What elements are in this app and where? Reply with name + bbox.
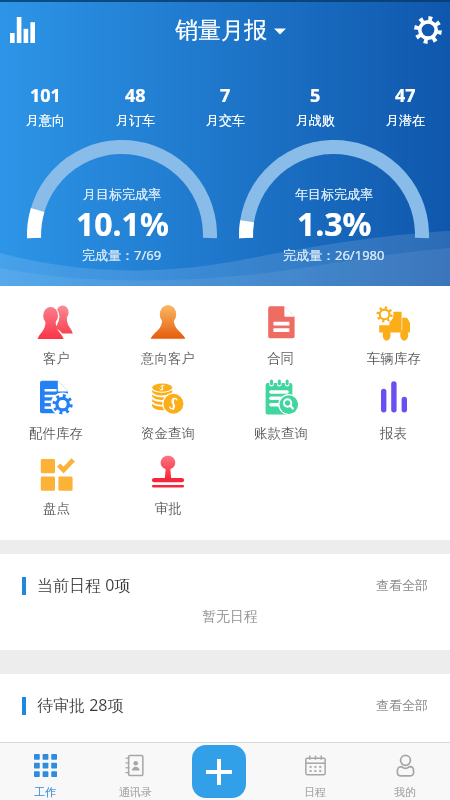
staticText: 完成量：7/69 [82,246,162,264]
staticText: 完成量：26/1980 [283,246,385,264]
staticText: 5 [310,83,321,108]
staticText: 日程 [304,785,326,799]
button[interactable]: 47 [360,83,450,128]
staticText: 月潜在 [386,112,425,128]
button[interactable]: Reports [0,8,44,52]
staticText: 工作 [34,785,56,799]
button[interactable]: Settings [406,8,450,52]
staticText: 通讯录 [119,785,152,799]
staticText: 月订车 [116,112,155,128]
button[interactable]: 查看全部 [372,693,432,717]
button[interactable]: 7 [180,83,270,128]
staticText: 资金查询 [141,425,195,442]
staticText: 年目标完成率 [295,186,373,202]
button[interactable]: 审批 [112,449,224,524]
staticText: 合同 [267,350,294,367]
staticText: 销量月报 [175,16,267,45]
button[interactable]: 合同 [224,299,337,374]
button[interactable]: 资金查询 [112,374,224,449]
staticText: 月目标完成率 [83,186,161,202]
staticText: 月交车 [206,112,245,128]
button[interactable]: 48 [90,83,180,128]
staticText: 查看全部 [376,697,428,713]
button[interactable]: 报表 [337,374,450,449]
staticText: 配件库存 [29,425,83,442]
staticText: 1.3% [297,202,372,246]
staticText: 客户 [43,350,70,367]
staticText: 待审批 28项 [37,694,124,716]
button[interactable]: 车辆库存 [337,299,450,374]
button[interactable]: 销量月报 [169,10,292,51]
staticText: 10.1% [76,202,169,246]
staticText: 47 [395,83,416,108]
button[interactable]: 客户 [0,299,112,374]
button[interactable]: 查看全部 [372,573,432,597]
staticText: 车辆库存 [367,350,421,367]
button[interactable]: 盘点 [0,449,112,524]
staticText: 我的 [394,785,416,799]
button[interactable]: 5 [270,83,360,128]
staticText: 月意向 [26,112,65,128]
button[interactable]: 意向客户 [112,299,224,374]
button[interactable]: 配件库存 [0,374,112,449]
button[interactable]: 101 [0,83,90,128]
staticText: 暂无日程 [202,608,258,626]
staticText: 意向客户 [141,350,195,367]
button[interactable]: 我的 [360,742,450,800]
staticText: 账款查询 [254,425,308,442]
staticText: 月战败 [296,112,335,128]
button[interactable]: 通讯录 [90,742,180,800]
button[interactable]: Add [192,745,246,798]
staticText: 盘点 [43,500,70,517]
staticText: 查看全部 [376,577,428,593]
button[interactable]: 工作 [0,742,90,800]
staticText: 当前日程 0项 [37,574,131,596]
staticText: 101 [30,83,61,108]
staticText: 48 [125,83,146,108]
button[interactable]: 账款查询 [224,374,337,449]
staticText: 报表 [380,425,407,442]
staticText: 审批 [155,500,182,517]
button[interactable]: 日程 [270,742,360,800]
staticText: 7 [220,83,231,108]
